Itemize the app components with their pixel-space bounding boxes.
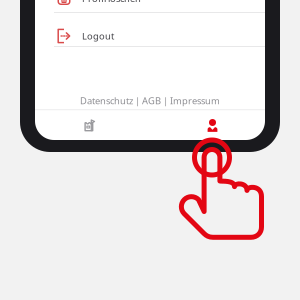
staticText: Datenschutz | AGB | Impressum — [80, 94, 220, 107]
button[interactable]: Shop — [62, 110, 118, 140]
staticText: Profil löschen — [82, 0, 141, 5]
button[interactable]: Profil — [184, 110, 240, 140]
button[interactable]: Datenschutz | AGB | Impressum — [35, 94, 265, 108]
staticText: Logout — [82, 30, 114, 42]
button[interactable]: Logout — [35, 23, 265, 49]
button[interactable]: Profil löschen — [35, 0, 265, 11]
